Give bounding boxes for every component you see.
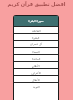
staticText: الأنعام — [32, 64, 40, 67]
staticText: آل عمران — [30, 42, 43, 46]
staticText: الأنفال — [32, 78, 40, 81]
staticText: النساء — [32, 50, 40, 53]
button[interactable]: النساء — [14, 47, 58, 54]
staticText: المائدة — [32, 57, 41, 60]
button[interactable]: آل عمران — [14, 40, 58, 47]
staticText: الأعراف — [31, 71, 41, 74]
staticText: البقرة — [32, 36, 40, 39]
button[interactable]: الأعراف — [14, 68, 58, 75]
button[interactable]: الأنعام — [14, 61, 58, 68]
button[interactable]: التوبة — [14, 82, 58, 89]
button[interactable]: البقرة — [14, 33, 58, 40]
button[interactable]: المائدة — [14, 54, 58, 61]
staticText: سورة البقرة — [28, 19, 44, 23]
button[interactable]: الفاتحة — [14, 26, 58, 33]
staticText: التوبة — [33, 85, 40, 88]
staticText: افضل تطبيق قرآن كريم — [0, 1, 73, 8]
button[interactable]: الأنفال — [14, 75, 58, 82]
staticText: الفاتحة — [32, 29, 41, 32]
